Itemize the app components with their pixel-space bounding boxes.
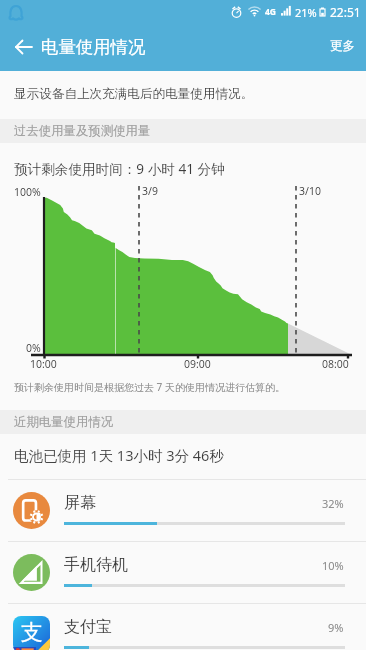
staticText: 10% bbox=[322, 558, 344, 573]
staticText: 09:00 bbox=[184, 357, 211, 371]
button[interactable]: 屏幕 bbox=[0, 479, 366, 541]
staticText: 支 bbox=[21, 619, 43, 647]
staticText: 3/9 bbox=[142, 184, 158, 198]
staticText: 支付宝 bbox=[64, 617, 112, 637]
staticText: 21% bbox=[295, 5, 317, 20]
staticText: 22:51 bbox=[330, 4, 361, 20]
staticText: 3/10 bbox=[299, 184, 321, 198]
staticText: 9% bbox=[328, 620, 344, 635]
staticText: 显示设备自上次充满电后的电量使用情况。 bbox=[14, 86, 254, 102]
staticText: 近期电量使用情况 bbox=[14, 414, 114, 430]
button[interactable]: 手机待机 bbox=[0, 541, 366, 603]
button[interactable]: Back bbox=[6, 29, 42, 65]
staticText: 100% bbox=[14, 185, 41, 199]
staticText: 08:00 bbox=[322, 357, 349, 371]
staticText: 0% bbox=[26, 341, 41, 355]
staticText: 电量使用情况 bbox=[41, 36, 146, 58]
staticText: 电池已使用 1天 13小时 3分 46秒 bbox=[14, 445, 224, 465]
button[interactable]: 更多 bbox=[318, 28, 366, 63]
button[interactable]: 支 bbox=[0, 603, 366, 650]
staticText: 屏幕 bbox=[64, 493, 96, 513]
staticText: 过去使用量及预测使用量 bbox=[14, 123, 151, 139]
staticText: 更多 bbox=[330, 38, 355, 54]
staticText: 32% bbox=[322, 496, 344, 511]
staticText: 手机待机 bbox=[64, 555, 128, 575]
staticText: 4G bbox=[265, 6, 277, 18]
staticText: 10:00 bbox=[30, 357, 57, 371]
staticText: 预计剩余使用时间：9 小时 41 分钟 bbox=[14, 159, 225, 178]
staticText: 预计剩余使用时间是根据您过去 7 天的使用情况进行估算的。 bbox=[14, 380, 285, 394]
